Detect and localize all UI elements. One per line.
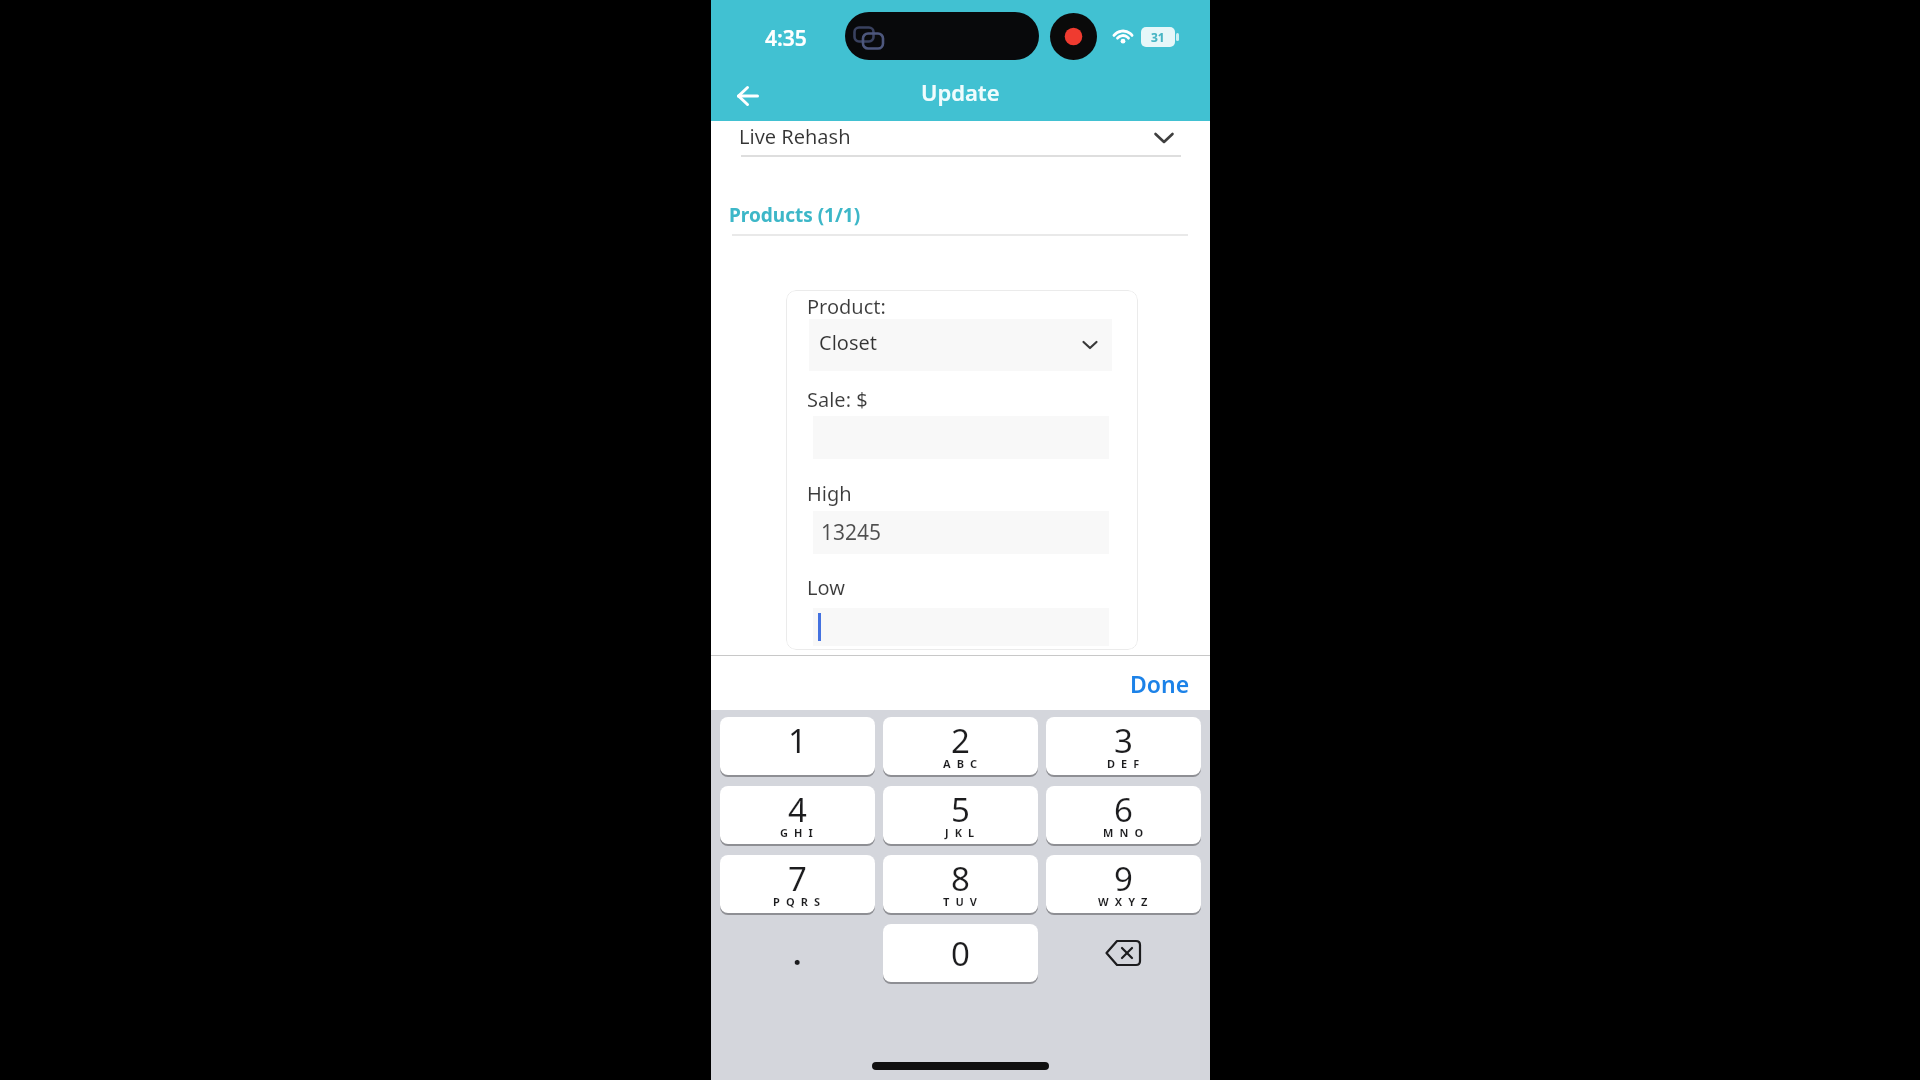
button[interactable]: Live Rehash <box>711 121 1210 157</box>
button[interactable] <box>737 86 759 106</box>
staticText: 9 <box>1114 856 1133 900</box>
staticText: 6 <box>1114 787 1133 831</box>
staticText: Done <box>1130 668 1190 699</box>
button[interactable]: . <box>720 924 875 982</box>
staticText: P Q R S <box>773 894 822 909</box>
staticText: J K L <box>945 825 976 840</box>
staticText: Update <box>921 77 1000 107</box>
staticText: D E F <box>1107 756 1141 771</box>
button[interactable]: 2 <box>883 717 1038 775</box>
staticText: Sale: $ <box>807 386 868 413</box>
staticText: 13245 <box>821 518 882 547</box>
button[interactable]: 1 <box>720 717 875 775</box>
button[interactable]: 7 <box>720 855 875 913</box>
button[interactable]: 13245 <box>813 511 1109 554</box>
staticText: G H I <box>780 825 815 840</box>
button[interactable]: 6 <box>1046 786 1201 844</box>
staticText: Low <box>807 574 845 601</box>
button[interactable]: 0 <box>883 924 1038 982</box>
staticText: 0 <box>951 931 970 976</box>
button[interactable]: 8 <box>883 855 1038 913</box>
staticText: 1 <box>788 718 807 762</box>
button[interactable]: Closet <box>809 319 1112 371</box>
staticText: M N O <box>1103 825 1145 840</box>
button[interactable]: Done <box>1130 668 1190 699</box>
staticText: High <box>807 480 852 507</box>
button[interactable]: 4 <box>720 786 875 844</box>
staticText: . <box>793 933 802 974</box>
staticText: Products (1/1) <box>729 202 861 228</box>
staticText: Closet <box>819 329 877 356</box>
staticText: W X Y Z <box>1098 894 1150 909</box>
staticText: 4:35 <box>765 24 807 50</box>
staticText: 4 <box>788 787 807 831</box>
button[interactable]: 3 <box>1046 717 1201 775</box>
staticText: T U V <box>943 894 979 909</box>
button[interactable]: 5 <box>883 786 1038 844</box>
staticText: 3 <box>1114 718 1133 762</box>
staticText: 2 <box>951 718 970 762</box>
staticText: 5 <box>951 787 970 831</box>
staticText: Live Rehash <box>739 123 851 150</box>
staticText: 31 <box>1151 29 1165 45</box>
button[interactable] <box>813 608 1109 646</box>
staticText: Product: <box>807 293 886 320</box>
staticText: A B C <box>943 756 979 771</box>
staticText: 8 <box>951 856 970 900</box>
button[interactable] <box>1046 924 1201 982</box>
button[interactable]: 9 <box>1046 855 1201 913</box>
staticText: 7 <box>788 856 807 900</box>
